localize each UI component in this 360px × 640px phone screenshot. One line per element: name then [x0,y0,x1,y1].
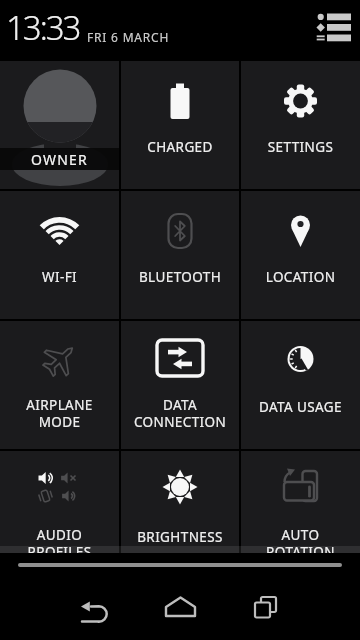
staticText: SETTINGS [241,138,360,156]
button[interactable]: AUDIO PROFILES [0,451,119,553]
button[interactable]: LOCATION [241,191,360,319]
button[interactable]: SETTINGS [241,61,360,189]
staticText: LOCATION [241,268,360,286]
staticText: DATA USAGE [241,398,360,416]
staticText: AUTO ROTATION [241,526,360,553]
button[interactable]: BRIGHTNESS [121,451,239,553]
staticText: DATA CONNECTION [121,396,239,431]
staticText: 13:33 [6,5,80,50]
button[interactable]: AUTO ROTATION [241,451,360,553]
staticText: WI-FI [0,268,119,286]
button[interactable] [58,584,122,634]
button[interactable]: CHARGED [121,61,239,189]
button[interactable] [236,584,300,634]
button[interactable] [148,584,212,634]
button[interactable]: DATA CONNECTION [121,321,239,449]
staticText: OWNER [31,150,88,169]
button[interactable] [312,8,356,48]
button[interactable]: AIRPLANE MODE [0,321,119,449]
staticText: AUDIO PROFILES [0,526,119,553]
staticText: CHARGED [121,138,239,156]
button[interactable]: OWNER [0,61,119,189]
staticText: BRIGHTNESS [121,528,239,546]
button[interactable]: DATA USAGE [241,321,360,449]
staticText: FRI 6 MARCH [87,29,170,45]
staticText: BLUETOOTH [121,268,239,286]
button[interactable]: WI-FI [0,191,119,319]
button[interactable]: BLUETOOTH [121,191,239,319]
staticText: AIRPLANE MODE [0,396,119,431]
